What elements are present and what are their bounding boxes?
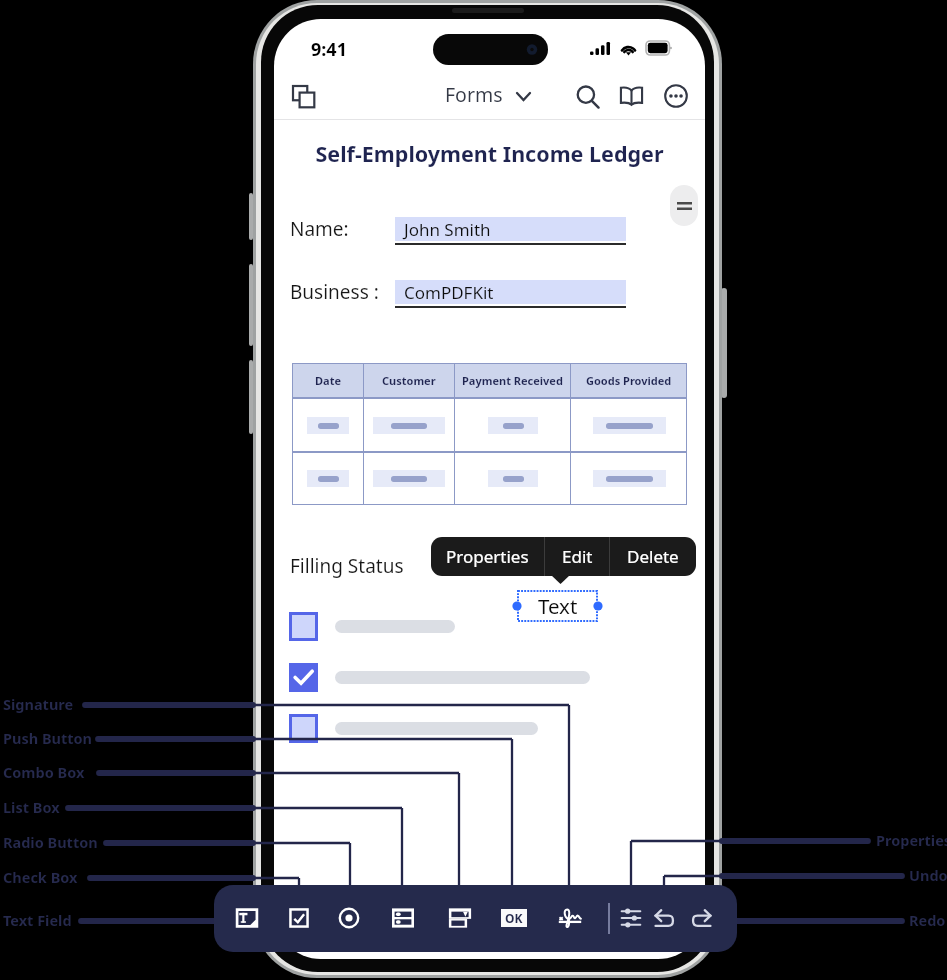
staticText: Forms [445,81,503,108]
button[interactable]: More options [656,76,696,116]
button[interactable]: Push button [494,898,534,938]
staticText: Combo Box [3,762,85,782]
staticText: Redo [909,910,946,930]
staticText: Check Box [3,867,78,887]
button[interactable]: Undo [646,900,682,936]
staticText: Name: [290,216,349,242]
staticText: Payment Received [462,373,563,388]
button[interactable]: List box [383,898,423,938]
button[interactable]: Unchecked item [289,612,318,641]
staticText: Properties [446,545,529,568]
button[interactable]: Radio button [329,898,369,938]
staticText: ComPDFKit [404,281,494,304]
button[interactable]: Redo [684,900,720,936]
staticText: Business : [290,279,379,305]
staticText: Properties [876,830,947,850]
button[interactable]: Search [567,76,607,116]
staticText: Text [538,592,578,620]
button[interactable]: Checked item [289,663,318,692]
staticText: Date [315,373,341,388]
staticText: Edit [562,545,593,568]
staticText: Goods Provided [586,373,672,388]
button[interactable]: Combo box [440,898,480,938]
staticText: Customer [382,373,436,388]
staticText: OK [505,910,523,926]
staticText: Radio Button [3,832,98,852]
button[interactable]: Menu [670,185,698,226]
button[interactable]: Check box [279,898,319,938]
staticText: List Box [3,797,60,817]
staticText: Push Button [3,728,93,748]
button[interactable]: Forms [445,81,531,108]
button[interactable]: Properties [431,537,544,576]
button[interactable]: Signature [550,898,590,938]
staticText: Delete [627,545,679,568]
staticText: Text Field [3,910,72,930]
staticText: Filling Status [290,553,404,579]
button[interactable]: Properties [613,900,649,936]
button[interactable]: Delete [610,537,696,576]
button[interactable]: Unchecked item [289,714,318,743]
staticText: Signature [3,694,74,714]
button[interactable]: Outline [611,76,651,116]
staticText: John Smith [404,218,491,241]
button[interactable]: Edit [545,537,609,576]
staticText: Undo [909,865,947,885]
button[interactable]: Text field [227,898,267,938]
button[interactable]: Pages [283,76,323,116]
staticText: 9:41 [311,37,347,62]
staticText: Self-Employment Income Ledger [274,139,705,168]
